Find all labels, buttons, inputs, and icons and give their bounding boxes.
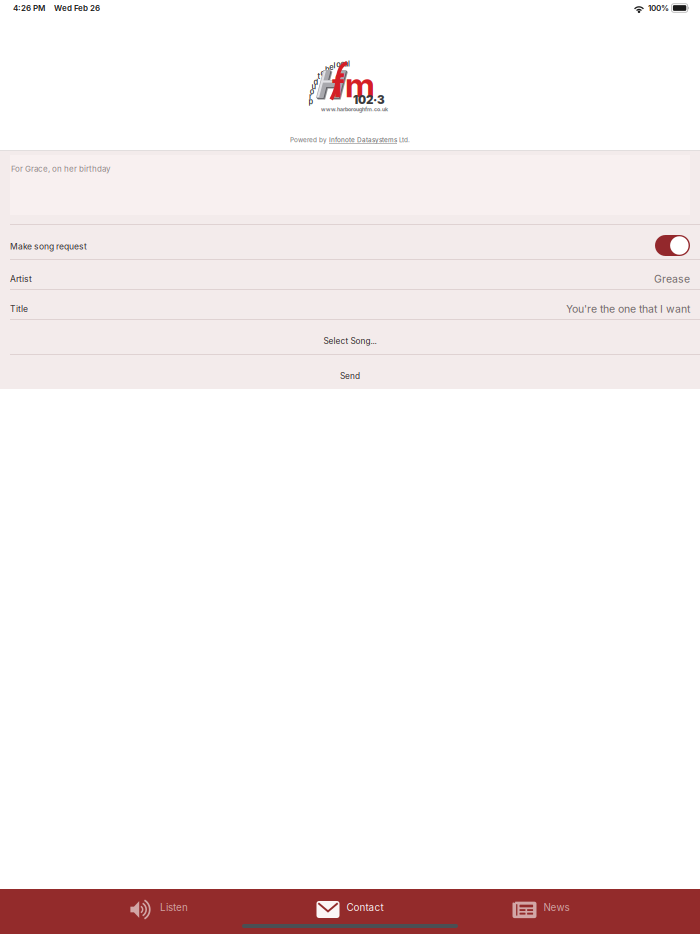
staticText: www.harboroughfm.co.uk <box>321 106 388 112</box>
button[interactable]: Make song request <box>0 225 700 259</box>
staticText: l <box>334 61 336 70</box>
button[interactable]: News <box>445 889 636 930</box>
staticText: You're the one that I want <box>566 303 690 315</box>
staticText: e <box>329 63 333 72</box>
staticText: News <box>543 901 569 913</box>
button[interactable]: Title <box>0 290 700 319</box>
button[interactable]: Select Song... <box>0 320 700 354</box>
button[interactable]: Artist <box>0 260 700 289</box>
button[interactable]: For Grace, on her birthday <box>0 150 700 224</box>
staticText: Title <box>10 304 28 314</box>
staticText: l <box>348 59 350 68</box>
staticText: b <box>325 65 330 74</box>
staticText: p <box>309 97 314 106</box>
staticText: Artist <box>10 274 32 284</box>
staticText: 100% <box>648 3 669 13</box>
staticText: Powered by <box>290 136 329 144</box>
staticText: 102·3 <box>353 93 385 107</box>
staticText: Make song request <box>10 241 87 252</box>
staticText: Ltd. <box>397 136 410 144</box>
button[interactable]: Contact <box>254 889 445 930</box>
staticText: o <box>320 69 325 78</box>
staticText: Contact <box>346 901 383 913</box>
button[interactable]: Powered by <box>290 135 410 145</box>
staticText: t <box>318 72 321 81</box>
staticText: Grease <box>654 273 690 285</box>
staticText: c <box>340 59 344 68</box>
staticText: Select Song... <box>323 336 376 346</box>
staticText: o <box>310 87 315 96</box>
staticText: For Grace, on her birthday <box>11 164 110 174</box>
staticText: Wed Feb 26 <box>54 3 100 13</box>
button[interactable]: Listen <box>63 889 254 930</box>
staticText: fm <box>332 65 375 105</box>
staticText: r <box>309 92 312 101</box>
staticText: Infonote Datasystems <box>329 136 397 144</box>
staticText: Listen <box>160 901 188 913</box>
staticText: Send <box>340 371 360 381</box>
staticText: o <box>336 60 341 69</box>
button[interactable]: Send <box>0 355 700 389</box>
staticText: d <box>314 77 319 86</box>
staticText: 4:26 PM <box>13 3 45 13</box>
staticText: a <box>344 59 348 68</box>
staticText: u <box>311 82 316 91</box>
